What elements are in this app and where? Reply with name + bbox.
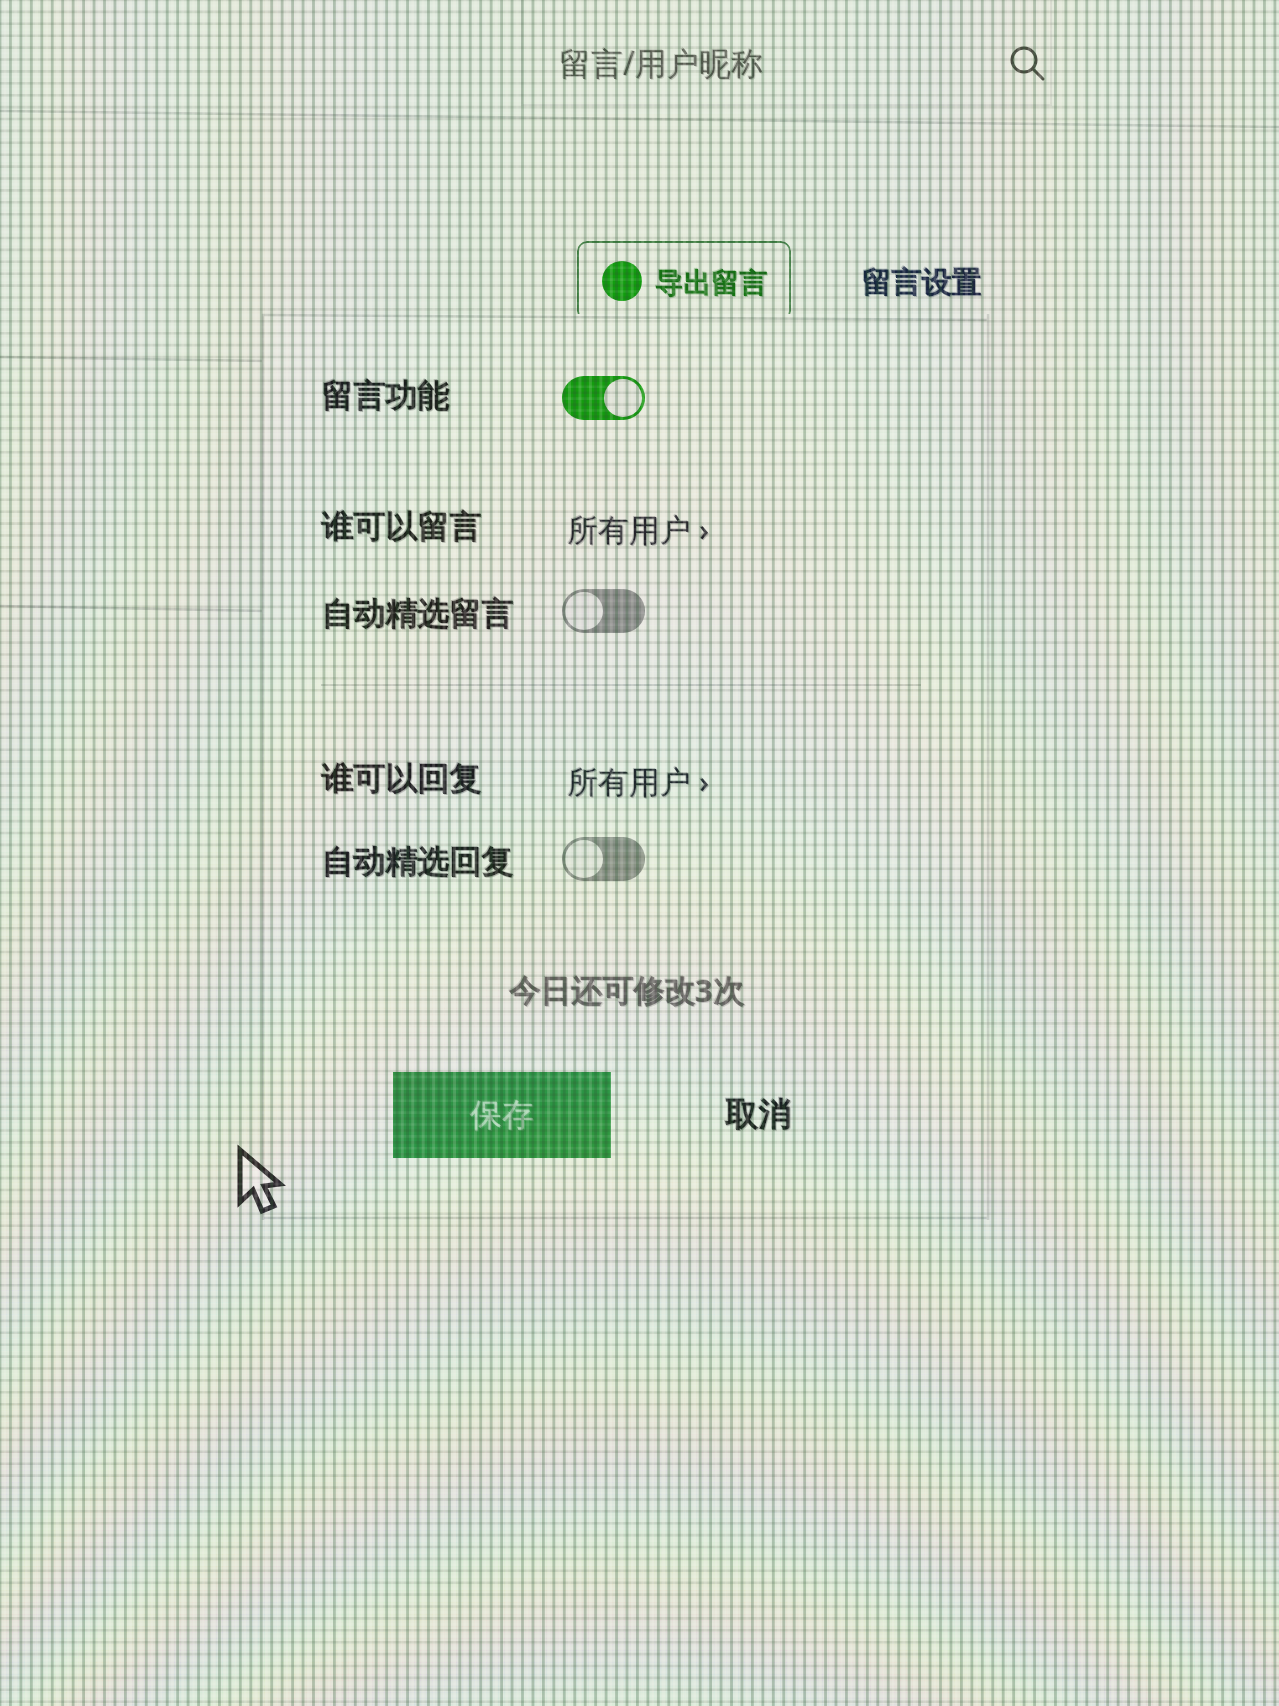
button[interactable]: Toggle on bbox=[562, 376, 645, 420]
staticText: 自动精选留言 bbox=[320, 593, 512, 633]
staticText: 取消 bbox=[725, 1094, 791, 1136]
staticText: 自动精选回复 bbox=[320, 841, 512, 881]
staticText: 留言功能 bbox=[320, 375, 448, 415]
staticText: 留言设置 bbox=[861, 264, 981, 302]
staticText: 所有用户 › bbox=[567, 508, 710, 550]
button[interactable]: 所有用户 › bbox=[567, 760, 710, 802]
staticText: 保存 bbox=[469, 1094, 533, 1134]
staticText: 留言/用户昵称 bbox=[559, 41, 763, 85]
staticText: 今日还可修改3次 bbox=[509, 969, 744, 1011]
button[interactable]: Toggle off bbox=[562, 837, 645, 881]
staticText: 保存 bbox=[470, 1095, 534, 1135]
button[interactable]: 取消 bbox=[725, 1094, 791, 1136]
staticText: 保存 bbox=[471, 1096, 535, 1136]
staticText: 所有用户 › bbox=[568, 509, 711, 551]
button[interactable]: 留言设置 bbox=[861, 264, 981, 302]
staticText: 导出留言 bbox=[655, 266, 767, 301]
button[interactable]: 导出留言 bbox=[577, 241, 791, 321]
staticText: 留言/用户昵称 bbox=[560, 42, 764, 86]
button[interactable]: Toggle off bbox=[562, 589, 645, 633]
button[interactable]: 所有用户 › bbox=[567, 508, 710, 550]
staticText: 所有用户 › bbox=[566, 759, 709, 801]
staticText: 所有用户 › bbox=[567, 760, 710, 802]
staticText: 谁可以回复 bbox=[321, 759, 481, 799]
staticText: 留言功能 bbox=[321, 376, 449, 416]
staticText: 留言功能 bbox=[322, 377, 450, 417]
staticText: 谁可以留言 bbox=[322, 508, 482, 548]
staticText: 自动精选回复 bbox=[322, 843, 514, 883]
staticText: 自动精选留言 bbox=[321, 594, 513, 634]
staticText: 自动精选留言 bbox=[322, 595, 514, 635]
staticText: 导出留言 bbox=[654, 265, 766, 300]
staticText: 导出留言 bbox=[656, 267, 768, 302]
staticText: 今日还可修改3次 bbox=[510, 970, 745, 1012]
staticText: 谁可以回复 bbox=[320, 758, 480, 798]
staticText: 谁可以留言 bbox=[321, 507, 481, 547]
staticText: 取消 bbox=[724, 1093, 790, 1135]
staticText: 留言设置 bbox=[860, 263, 980, 301]
staticText: 所有用户 › bbox=[568, 761, 711, 803]
other: Search bbox=[1010, 46, 1054, 90]
staticText: 谁可以留言 bbox=[320, 506, 480, 546]
button[interactable]: 保存 bbox=[393, 1072, 611, 1158]
staticText: 留言设置 bbox=[862, 265, 982, 303]
staticText: 取消 bbox=[726, 1095, 792, 1137]
button[interactable]: 留言/用户昵称 bbox=[521, 0, 1052, 106]
staticText: 自动精选回复 bbox=[321, 842, 513, 882]
staticText: 今日还可修改3次 bbox=[508, 968, 743, 1010]
staticText: 谁可以回复 bbox=[322, 760, 482, 800]
staticText: 留言/用户昵称 bbox=[558, 40, 762, 84]
staticText: 所有用户 › bbox=[566, 507, 709, 549]
